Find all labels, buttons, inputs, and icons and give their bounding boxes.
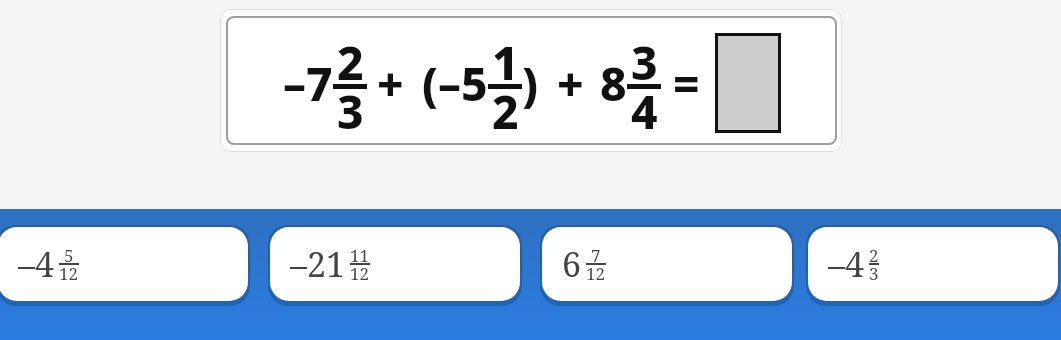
staticText: (–5 [422, 52, 488, 115]
staticText: 12 [59, 262, 79, 285]
staticText: 7 [591, 244, 601, 267]
staticText: 2 [337, 31, 364, 94]
staticText: –4 [18, 241, 55, 287]
staticText: 3 [337, 80, 364, 143]
staticText: –7 [283, 52, 333, 115]
staticText: 4 [631, 80, 658, 143]
staticText: 3 [631, 31, 658, 94]
staticText: 3 [869, 262, 879, 285]
staticText: 12 [586, 262, 606, 285]
staticText: 6 [562, 241, 582, 287]
staticText: 2 [492, 80, 519, 143]
button[interactable]: –4 [0, 227, 248, 301]
staticText: 1 [492, 31, 519, 94]
staticText: 11 [350, 244, 370, 267]
staticText: –4 [828, 241, 865, 287]
staticText: = [673, 52, 700, 115]
staticText: + [557, 52, 584, 115]
staticText: 8 [600, 52, 627, 115]
staticText: –21 [290, 241, 346, 287]
staticText: + [377, 52, 404, 115]
button[interactable]: –21 [270, 227, 520, 301]
button[interactable]: –4 [808, 227, 1058, 301]
staticText: 12 [350, 262, 370, 285]
button[interactable]: 6 [542, 227, 792, 301]
staticText: ) [522, 52, 539, 115]
staticText: 5 [64, 244, 74, 267]
staticText: 2 [869, 244, 879, 267]
